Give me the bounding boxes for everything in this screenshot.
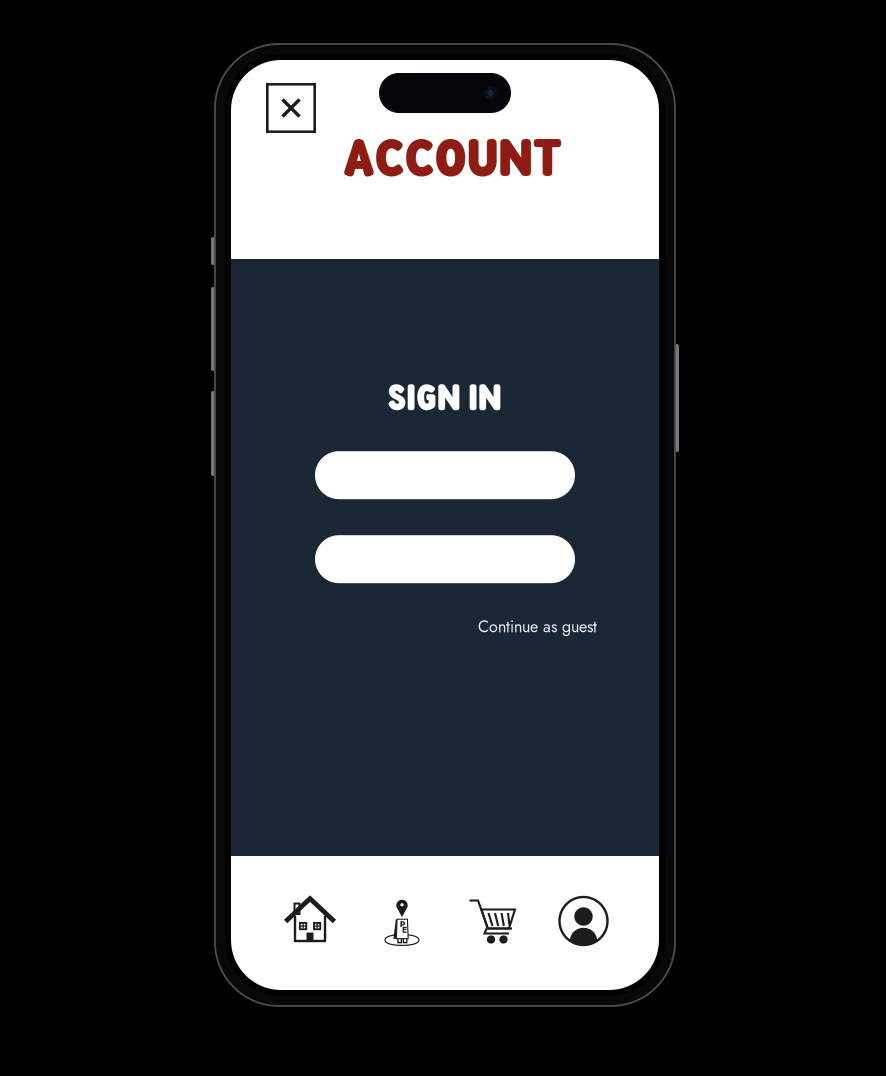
staticText: Continue as guest <box>478 615 597 638</box>
staticText: ACCOUNT <box>343 124 562 188</box>
staticText: SIGN IN <box>388 374 502 419</box>
staticText: E <box>402 923 407 936</box>
button[interactable]: Home <box>264 892 356 950</box>
button[interactable]: Continue as guest <box>478 615 597 638</box>
staticText: P <box>400 918 405 931</box>
button[interactable]: Account <box>536 892 631 950</box>
button[interactable]: Stores <box>356 892 448 950</box>
button[interactable]: Cart <box>448 892 536 950</box>
button[interactable]: Close <box>266 83 316 133</box>
